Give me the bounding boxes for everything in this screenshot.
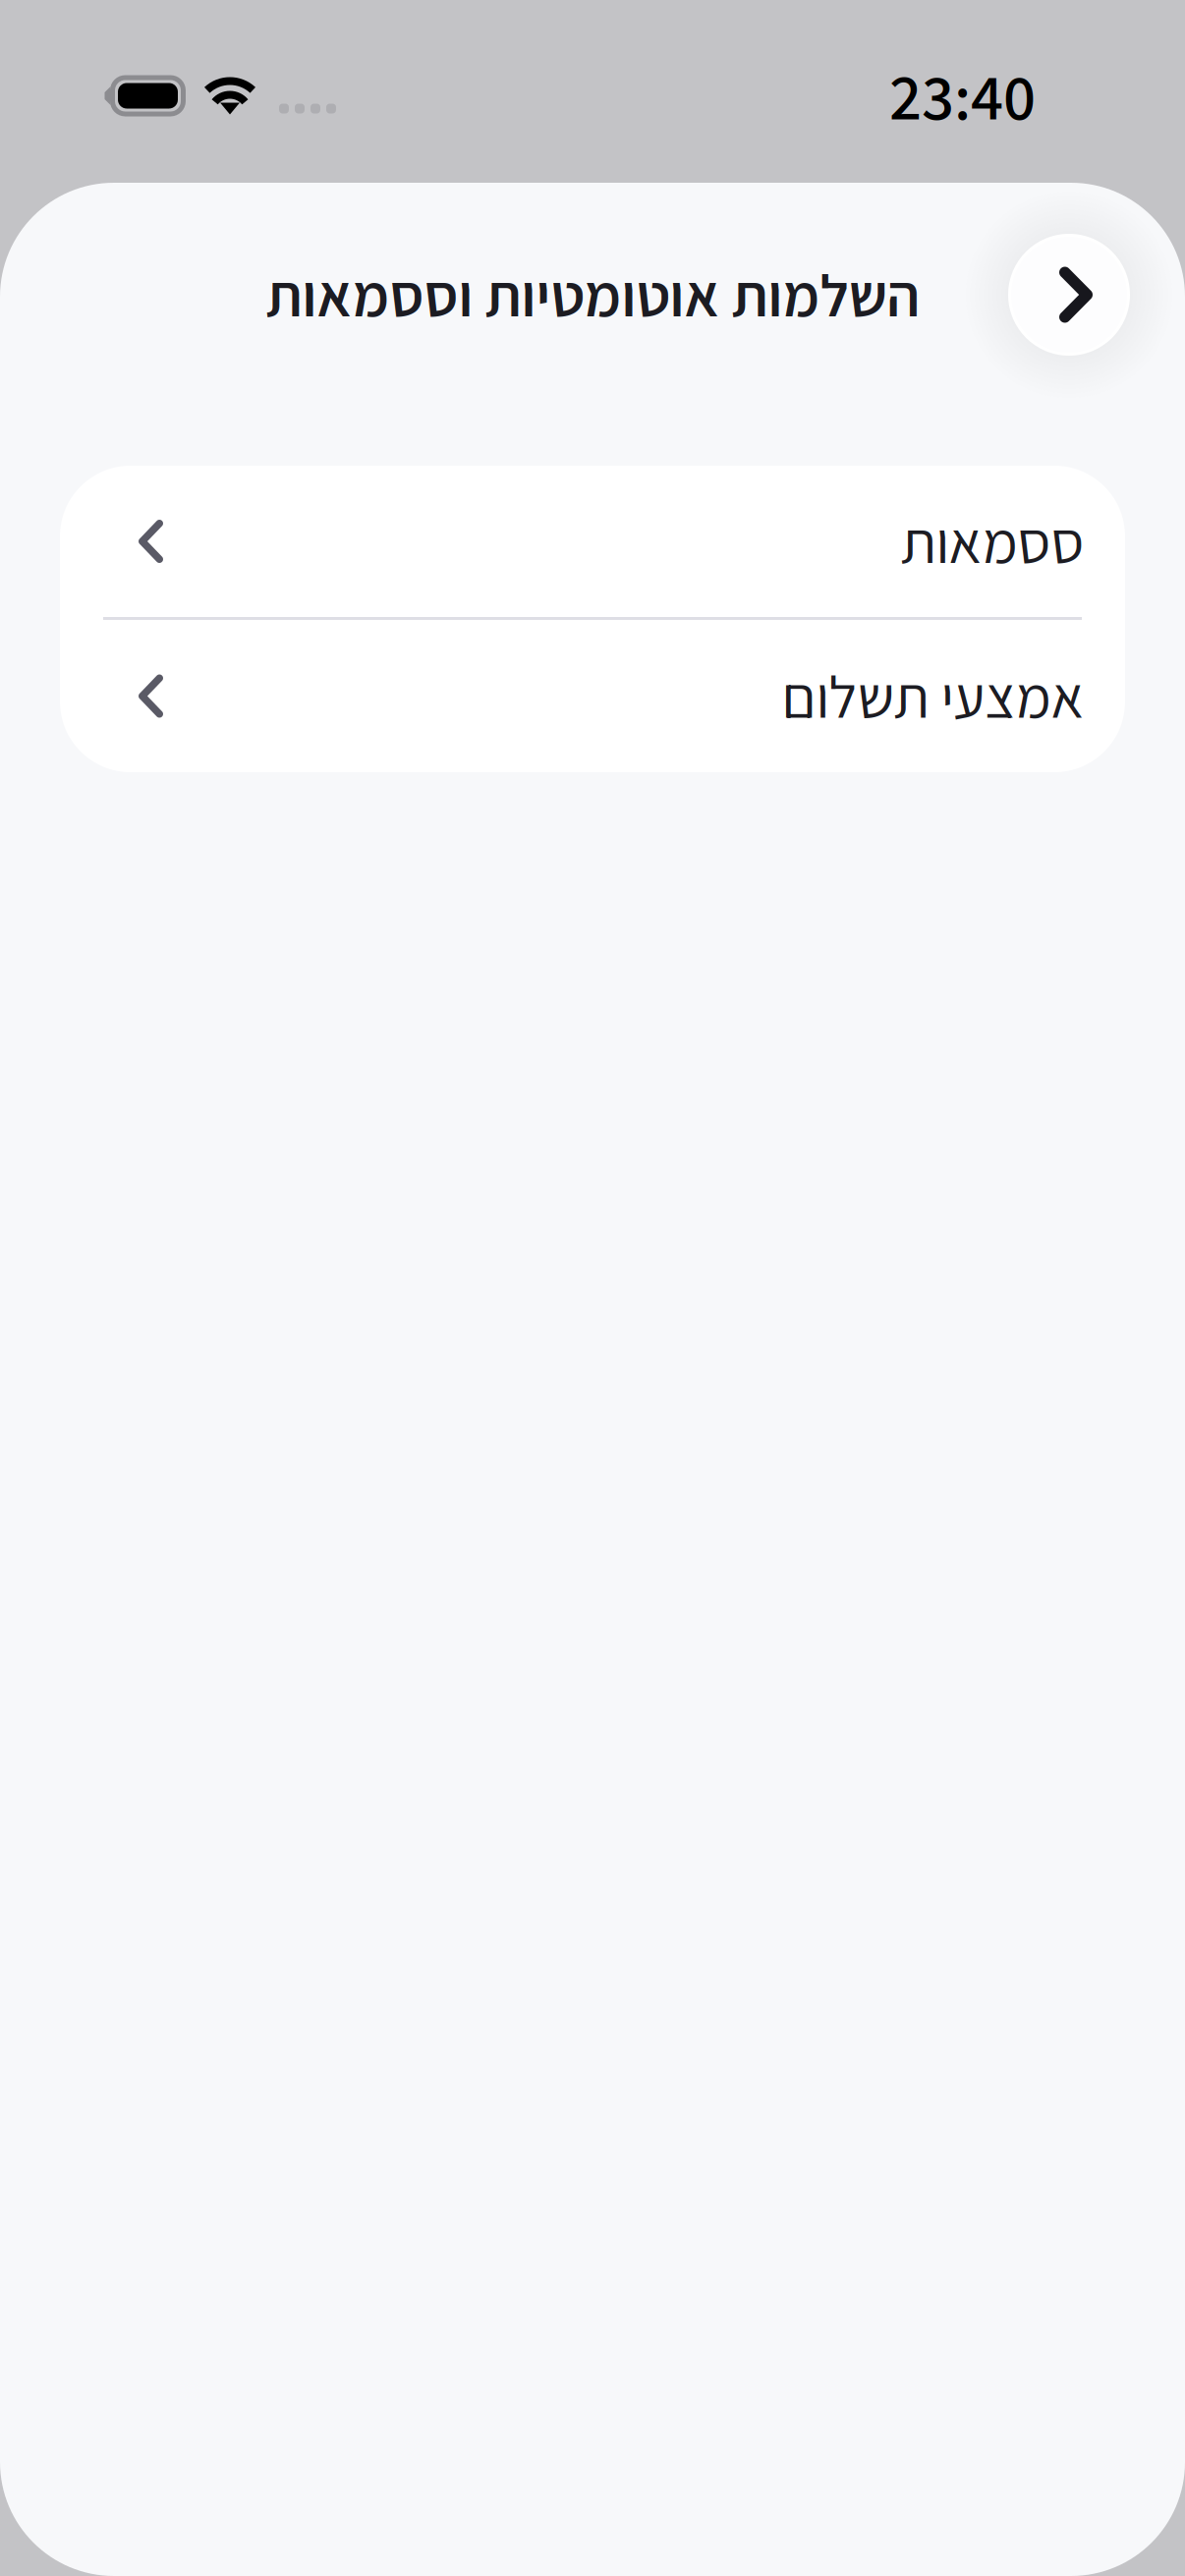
button[interactable]: ססמאות — [60, 466, 1125, 617]
button[interactable]: אמצעי תשלום — [60, 620, 1125, 772]
staticText: השלמות אוטומטיות וססמאות — [265, 256, 920, 333]
staticText: אמצעי תשלום — [781, 658, 1084, 735]
staticText: 23:40 — [889, 54, 1036, 138]
staticText: ססמאות — [900, 503, 1084, 580]
button[interactable]: Close — [1004, 230, 1134, 360]
